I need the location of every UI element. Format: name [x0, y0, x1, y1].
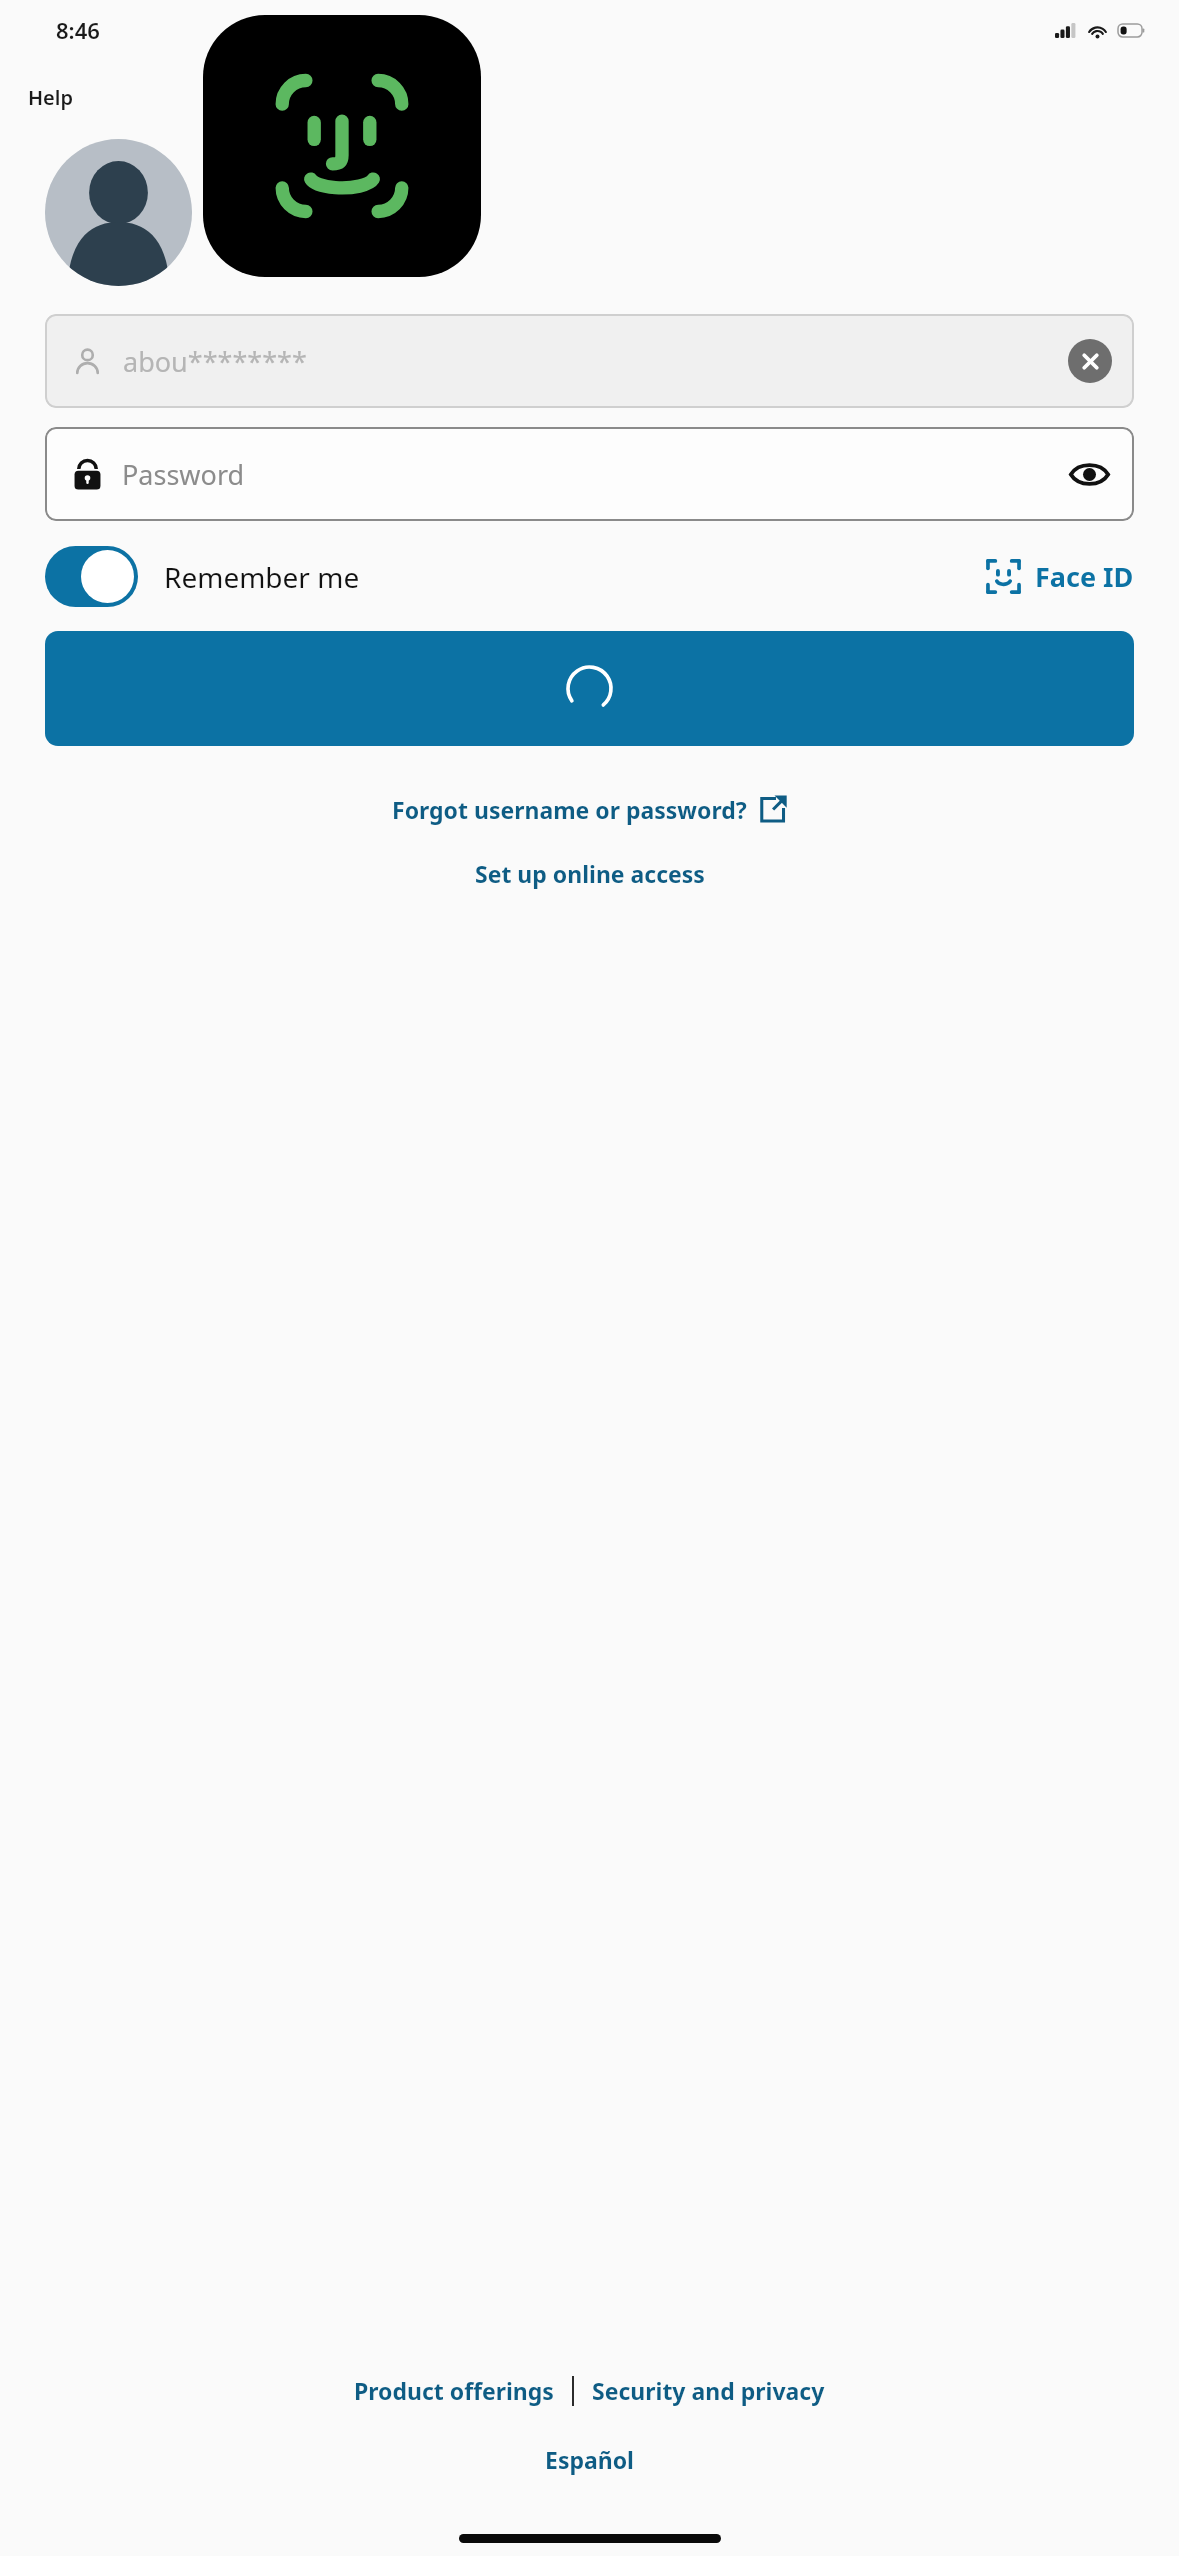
button[interactable]: Switch profile	[220, 213, 378, 252]
button[interactable]: Face ID	[985, 553, 1134, 600]
button[interactable]: Profile picture	[45, 139, 192, 286]
button[interactable]: Security and privacy	[587, 2370, 830, 2411]
staticText: Set up online access	[475, 858, 705, 889]
staticText: Español	[545, 2444, 634, 2475]
staticText: Security and privacy	[592, 2375, 825, 2406]
button[interactable]: Help	[24, 80, 77, 115]
staticText: Password	[122, 456, 245, 493]
button[interactable]: Sign in, loading	[45, 631, 1134, 746]
staticText: Help	[28, 84, 73, 111]
other: Face ID authenticating	[203, 15, 481, 277]
staticText: Switch profile	[220, 217, 378, 248]
staticText: Forgot username or password?	[392, 794, 747, 825]
staticText: Remember me	[164, 558, 360, 596]
button[interactable]: abou********	[45, 314, 1134, 408]
staticText: Product offerings	[354, 2375, 554, 2406]
button[interactable]: Clear username	[1068, 339, 1112, 383]
button[interactable]: Forgot username or password?	[384, 789, 795, 830]
button[interactable]: Remember me	[45, 546, 360, 607]
button[interactable]: Español	[535, 2439, 644, 2480]
button[interactable]: Password	[45, 427, 1134, 521]
staticText: 8:46	[56, 15, 100, 45]
button[interactable]: Show password	[1066, 451, 1112, 497]
staticText: abou********	[123, 343, 307, 380]
staticText: Face ID	[1035, 558, 1134, 595]
button[interactable]: Product offerings	[349, 2370, 559, 2411]
button[interactable]: Set up online access	[465, 853, 715, 894]
